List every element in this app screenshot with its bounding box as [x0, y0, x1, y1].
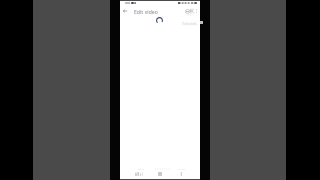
staticText: Edit video — [134, 9, 158, 16]
button[interactable]: More options — [193, 7, 200, 14]
staticText: Tutorials — [182, 21, 197, 26]
button[interactable]: Tutorial tooltip — [182, 21, 197, 26]
button[interactable]: Help — [183, 7, 191, 15]
button[interactable]: Text — [180, 172, 183, 176]
button[interactable]: Back — [121, 7, 129, 15]
button[interactable]: Audio — [135, 172, 143, 176]
button[interactable]: Cut — [188, 7, 196, 15]
